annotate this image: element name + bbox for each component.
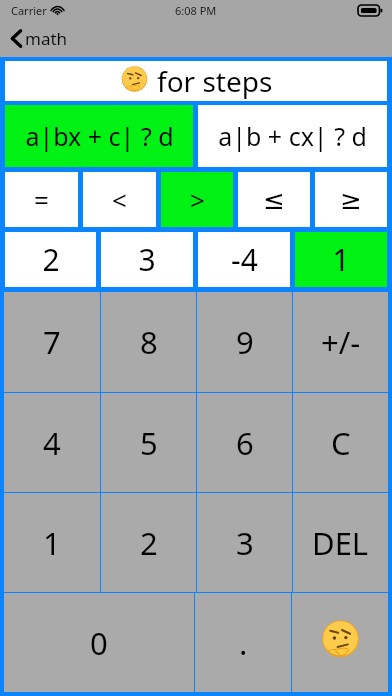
staticText: C (331, 422, 351, 464)
staticText: DEL (312, 522, 369, 564)
button[interactable]: ≤ (238, 172, 310, 227)
staticText: 9 (236, 321, 254, 363)
staticText: a|bx + c| ? d (25, 119, 174, 153)
staticText: +/- (321, 321, 361, 363)
staticText: for steps (157, 62, 273, 100)
button[interactable]: < (83, 172, 156, 227)
staticText: 3 (236, 522, 254, 564)
button[interactable]: 3 (101, 232, 193, 287)
staticText: < (112, 182, 127, 217)
other: Back (10, 28, 23, 49)
button[interactable]: 6 (197, 393, 292, 492)
staticText: Carrier (11, 3, 47, 18)
staticText: = (34, 182, 49, 217)
button[interactable]: -4 (198, 232, 290, 287)
staticText: math (25, 27, 68, 50)
staticText: 1 (43, 522, 61, 564)
button[interactable]: ≥ (315, 172, 387, 227)
staticText: 4 (43, 422, 61, 464)
staticText: 0 (90, 622, 108, 664)
staticText: 2 (42, 239, 60, 280)
button[interactable]: 3 (197, 493, 292, 592)
staticText: a|b + cx| ? d (218, 119, 367, 153)
staticText: > (190, 182, 205, 217)
button[interactable]: 1 (295, 232, 387, 287)
button[interactable]: 8 (101, 292, 196, 392)
button[interactable]: 5 (101, 393, 196, 492)
button[interactable]: C (293, 393, 388, 492)
button[interactable]: Show steps (292, 593, 388, 692)
button[interactable]: 2 (5, 232, 96, 287)
staticText: 2 (140, 522, 158, 564)
button[interactable]: 2 (101, 493, 196, 592)
staticText: . (239, 622, 248, 664)
staticText: 6:08 PM (175, 3, 217, 18)
button[interactable]: 1 (4, 493, 100, 592)
staticText: 7 (43, 321, 61, 363)
button[interactable]: a|b + cx| ? d (198, 105, 387, 167)
staticText: 1 (332, 239, 350, 280)
staticText: ≥ (340, 185, 362, 215)
staticText: -4 (231, 239, 258, 280)
button[interactable]: 0 (4, 593, 194, 692)
button[interactable]: 9 (197, 292, 292, 392)
button[interactable]: +/- (293, 292, 388, 392)
button[interactable]: > (161, 172, 233, 227)
button[interactable]: 7 (4, 292, 100, 392)
staticText: 8 (140, 321, 158, 363)
button[interactable]: for steps (5, 61, 387, 101)
button[interactable]: = (5, 172, 78, 227)
staticText: 5 (140, 422, 158, 464)
button[interactable]: . (195, 593, 291, 692)
staticText: ≤ (263, 185, 285, 215)
staticText: 6 (236, 422, 254, 464)
button[interactable]: 4 (4, 393, 100, 492)
staticText: 3 (138, 239, 156, 280)
button[interactable]: Back (0, 20, 392, 57)
button[interactable]: DEL (293, 493, 388, 592)
button[interactable]: a|bx + c| ? d (5, 105, 193, 167)
